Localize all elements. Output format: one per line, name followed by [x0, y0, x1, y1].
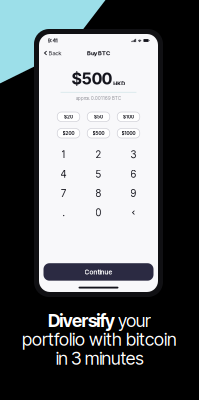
button[interactable]: .	[46, 203, 81, 222]
button[interactable]: 3	[116, 145, 151, 164]
staticText: HKD	[113, 80, 125, 87]
staticText: approx. 0.001169 BTC	[76, 96, 121, 101]
staticText: portfolio with bitcoin	[22, 328, 177, 350]
staticText: $100	[123, 114, 134, 120]
staticText: Continue	[84, 268, 112, 276]
button[interactable]: Back	[39, 47, 67, 58]
staticText: $500	[92, 130, 104, 136]
staticText: 8	[95, 187, 101, 199]
staticText: 4	[60, 168, 66, 180]
button[interactable]: 0	[81, 203, 116, 222]
staticText: $20	[64, 114, 73, 120]
button[interactable]: 6	[116, 164, 151, 184]
staticText: 6	[130, 168, 136, 180]
staticText: 3	[130, 149, 136, 161]
button[interactable]: Delete	[116, 203, 151, 222]
staticText: 2	[95, 149, 101, 161]
button[interactable]: 1	[46, 145, 81, 164]
button[interactable]: $50	[87, 112, 110, 121]
button[interactable]: $200	[57, 128, 80, 138]
button[interactable]: $500	[87, 128, 110, 138]
staticText: 0	[95, 206, 101, 219]
staticText: $50	[94, 114, 103, 120]
staticText: $1000	[121, 130, 135, 136]
staticText: 5	[95, 168, 101, 180]
button[interactable]: $1000	[117, 128, 140, 138]
staticText: $500	[72, 69, 112, 88]
staticText: $200	[62, 130, 74, 136]
staticText: 9	[130, 187, 136, 199]
staticText: Buy BTC	[87, 49, 110, 57]
button[interactable]: Continue	[43, 263, 153, 281]
staticText: in 3 minutes	[56, 347, 143, 369]
button[interactable]: 4	[46, 164, 81, 184]
staticText: Back	[49, 49, 62, 57]
staticText: 9:41	[47, 37, 57, 44]
button[interactable]: 8	[81, 184, 116, 203]
button[interactable]: 5	[81, 164, 116, 184]
button[interactable]: $20	[57, 112, 80, 121]
staticText: Diversify your	[48, 310, 151, 331]
button[interactable]: $100	[117, 112, 140, 121]
button[interactable]: 2	[81, 145, 116, 164]
button[interactable]: 7	[46, 184, 81, 203]
staticText: .	[62, 206, 64, 219]
button[interactable]: 9	[116, 184, 151, 203]
staticText: 1	[61, 149, 65, 161]
staticText: 7	[61, 187, 66, 199]
